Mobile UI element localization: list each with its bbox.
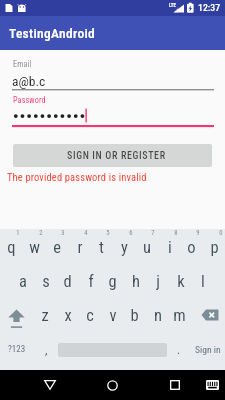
button[interactable]: p <box>203 231 225 263</box>
staticText: 7 <box>151 229 155 237</box>
staticText: n <box>154 306 162 325</box>
button[interactable]: f <box>79 265 102 297</box>
staticText: w <box>29 238 40 257</box>
button[interactable]: e <box>45 231 68 263</box>
button[interactable]: Recent apps <box>163 373 187 397</box>
button[interactable]: z <box>33 299 56 331</box>
button[interactable]: w <box>23 231 46 263</box>
button[interactable]: n <box>146 299 169 331</box>
staticText: Sign in <box>195 344 221 355</box>
button[interactable]: u <box>135 231 158 263</box>
staticText: 4 <box>84 229 88 237</box>
staticText: SIGN IN OR REGISTER <box>67 150 166 162</box>
staticText: o <box>187 238 196 257</box>
staticText: j <box>156 272 160 291</box>
button[interactable]: y <box>113 231 136 263</box>
staticText: 5 <box>106 229 110 237</box>
button[interactable]: ?123 <box>0 334 35 366</box>
staticText: p <box>210 238 219 257</box>
button[interactable]: b <box>123 299 146 331</box>
staticText: 12:37 <box>198 2 221 13</box>
staticText: u <box>143 238 151 257</box>
staticText: z <box>41 306 49 325</box>
button[interactable]: c <box>78 299 101 331</box>
button[interactable]: Backspace <box>192 300 225 334</box>
button[interactable]: o <box>180 231 203 263</box>
staticText: The provided password is invalid <box>7 171 147 183</box>
button[interactable]: t <box>90 231 113 263</box>
button[interactable]: m <box>168 299 191 331</box>
staticText: c <box>86 306 94 325</box>
button[interactable]: i <box>158 231 181 263</box>
staticText: ?123 <box>8 344 26 355</box>
staticText: b <box>130 306 139 325</box>
button[interactable]: v <box>101 299 124 331</box>
staticText: s <box>42 272 50 291</box>
staticText: f <box>88 272 94 291</box>
staticText: q <box>7 238 16 257</box>
staticText: LTE <box>169 2 176 8</box>
staticText: 0 <box>219 229 223 237</box>
staticText: 2 <box>39 229 43 237</box>
staticText: Password <box>13 95 46 105</box>
button[interactable]: s <box>34 265 57 297</box>
staticText: , <box>45 343 48 357</box>
button[interactable]: Sign in <box>190 334 225 366</box>
staticText: a <box>19 272 27 291</box>
button[interactable]: Home <box>100 373 124 397</box>
staticText: d <box>63 272 72 291</box>
staticText: h <box>132 272 140 291</box>
staticText: 1 <box>16 229 20 237</box>
button[interactable]: h <box>124 265 147 297</box>
button[interactable]: q <box>0 231 23 263</box>
staticText: v <box>109 306 117 325</box>
staticText: TestingAndroid <box>9 25 96 41</box>
button[interactable]: r <box>68 231 91 263</box>
staticText: 6 <box>129 229 133 237</box>
button[interactable]: g <box>101 265 124 297</box>
staticText: k <box>177 272 185 291</box>
staticText: e <box>53 238 61 257</box>
staticText: m <box>173 306 186 325</box>
staticText: y <box>121 238 128 257</box>
button[interactable]: Switch keyboard <box>202 375 222 395</box>
staticText: l <box>201 272 205 291</box>
button[interactable]: Email <box>0 50 225 91</box>
button[interactable]: Password <box>0 93 225 126</box>
staticText: 8 <box>174 229 178 237</box>
button[interactable]: j <box>146 265 169 297</box>
button[interactable]: . <box>172 334 190 366</box>
button[interactable]: a <box>11 265 34 297</box>
staticText: i <box>168 238 172 257</box>
staticText: r <box>77 238 83 257</box>
staticText: 9 <box>196 229 200 237</box>
button[interactable]: d <box>56 265 79 297</box>
staticText: a@b.c <box>12 73 46 89</box>
button[interactable]: Shift <box>0 300 33 334</box>
button[interactable]: , <box>36 334 56 366</box>
staticText: 3 <box>61 229 65 237</box>
staticText: t <box>99 238 104 257</box>
button[interactable]: x <box>56 299 79 331</box>
button[interactable]: k <box>169 265 192 297</box>
staticText: x <box>64 306 72 325</box>
staticText: Email <box>13 59 32 69</box>
staticText: . <box>177 343 181 357</box>
button[interactable]: SIGN IN OR REGISTER <box>13 144 212 167</box>
button[interactable]: Back <box>38 373 62 397</box>
button[interactable]: l <box>191 265 214 297</box>
staticText: g <box>108 272 117 291</box>
